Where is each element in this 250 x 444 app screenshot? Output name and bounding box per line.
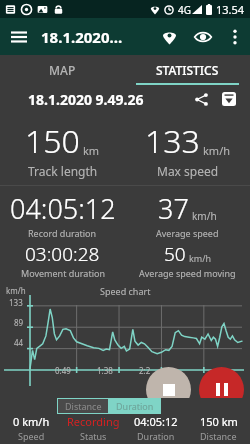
button[interactable]: Pause	[199, 367, 244, 412]
staticText: 133	[145, 119, 200, 163]
button[interactable]: Duration	[109, 398, 161, 414]
button[interactable]: Menu	[0, 18, 37, 55]
button[interactable]: 0 km/h	[0, 414, 62, 442]
staticText: Average speed moving	[139, 267, 236, 279]
button[interactable]: Distance	[57, 398, 109, 414]
staticText: 1:38	[97, 365, 113, 376]
staticText: 04:05:12	[10, 190, 116, 227]
staticText: Duration	[137, 430, 175, 442]
staticText: 18.1.2020 9.49.26	[28, 90, 188, 109]
button[interactable]: MAP	[0, 55, 125, 85]
button[interactable]: Save	[216, 86, 242, 112]
staticText: 0 km/h	[13, 414, 50, 429]
staticText: 18.1.2020…	[41, 27, 152, 47]
button[interactable]: Location	[152, 20, 186, 54]
staticText: 37	[158, 190, 189, 227]
staticText: MAP	[49, 62, 76, 78]
staticText: Duration	[116, 400, 154, 412]
staticText: 04:05:12	[134, 414, 178, 429]
staticText: 2:2	[139, 365, 151, 376]
button[interactable]: 150 km	[187, 414, 250, 442]
staticText: Status	[80, 430, 107, 442]
staticText: 150	[25, 119, 80, 163]
staticText: 44	[14, 337, 24, 348]
staticText: Max speed	[157, 163, 219, 179]
button[interactable]: Recording	[62, 414, 124, 442]
staticText: 50	[164, 241, 186, 267]
staticText: Record duration	[28, 227, 97, 239]
staticText: 150 km	[200, 414, 238, 429]
staticText: 133	[9, 297, 23, 308]
staticText: Distance	[65, 400, 102, 412]
staticText: Average speed	[156, 227, 219, 239]
staticText: km	[83, 143, 100, 158]
staticText: km/h	[189, 252, 212, 264]
button[interactable]: 04:05:12	[124, 414, 187, 442]
staticText: km/h	[203, 143, 231, 158]
staticText: STATISTICS	[156, 62, 219, 78]
button[interactable]: More options	[220, 22, 250, 52]
staticText: 03:00:28	[25, 241, 100, 267]
staticText: km/h	[192, 209, 217, 223]
staticText: Recording	[67, 414, 120, 429]
staticText: 0:49	[55, 365, 71, 376]
staticText: Track length	[28, 163, 98, 179]
staticText: 13.54	[216, 2, 245, 17]
staticText: km/h	[6, 285, 26, 296]
button[interactable]: Visibility	[186, 20, 220, 54]
staticText: Speed	[18, 430, 45, 442]
button[interactable]: Share	[188, 86, 214, 112]
staticText: 4G	[178, 3, 191, 17]
button[interactable]: STATISTICS	[125, 55, 250, 85]
button[interactable]: Stop	[146, 367, 191, 412]
staticText: Movement duration	[21, 267, 105, 279]
staticText: Speed chart	[100, 285, 151, 297]
staticText: 89	[14, 317, 24, 328]
staticText: Distance	[200, 430, 237, 442]
